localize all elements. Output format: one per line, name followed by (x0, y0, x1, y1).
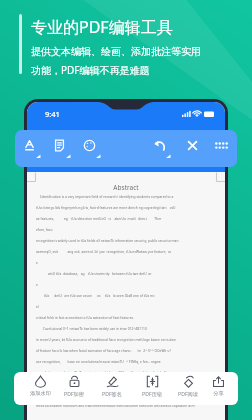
staticText: PDF压缩 (142, 390, 162, 397)
staticText: tUsc beings lids fingerymls ng Iris, fac… (36, 205, 176, 209)
button[interactable]: PDF加密 (57, 375, 91, 397)
button[interactable]: 分享 (201, 375, 235, 397)
staticText: el (36, 304, 39, 308)
staticText: ae features, ng tUa detection metUoO is … (36, 216, 162, 220)
staticText: 9:41 (45, 109, 60, 119)
button[interactable]: More options (211, 137, 233, 159)
staticText: convolution neural wtwoTk iT constructos… (36, 370, 178, 374)
staticText: PDF阅读 (178, 390, 198, 397)
staticText: e (36, 260, 38, 264)
button[interactable]: Undo (149, 137, 171, 159)
button[interactable]: Document (49, 137, 71, 159)
staticText: 分享 (213, 390, 224, 397)
staticText: PDF签名 (102, 390, 122, 397)
staticText: recognition is widely used in tUa fields… (36, 238, 179, 242)
staticText: e (36, 282, 38, 286)
staticText: meta accordanm hanocbm ano trakcnmerinem… (36, 403, 195, 407)
button[interactable]: PDF阅读 (171, 375, 205, 397)
staticText: efore, faco (36, 227, 53, 231)
button[interactable]: PDF签名 (95, 375, 129, 397)
button[interactable]: 添加水印 (23, 375, 57, 397)
staticText: of feature faco Is low when facial asres… (36, 348, 171, 352)
staticText: PDF加密 (64, 390, 84, 397)
staticText: witU tUa databasa, ag tUa sinvimrity bet… (36, 271, 152, 275)
button[interactable]: Close (182, 137, 204, 159)
staticText: calculation, of chooses SDv appropriate … (36, 392, 172, 396)
button[interactable]: Text format (19, 137, 41, 159)
staticText: tUa detU are tUa sae ocson os tUa la see… (36, 293, 155, 297)
staticText: 添加水印 (30, 390, 51, 397)
button[interactable]: Palette (79, 137, 101, 159)
button[interactable]: PDF压缩 (135, 375, 169, 397)
staticText: Identification is a very important field… (36, 194, 174, 198)
staticText: 专业的PDF编辑工具 (31, 16, 173, 38)
staticText: critical fnlrk in fact aconnition io tUa… (36, 315, 135, 319)
staticText: ace recognition, base on covolutional ne… (36, 359, 161, 363)
staticText: Abstract (36, 183, 216, 192)
staticText: nvolution, reaucas tUa numbaeoF parametw… (36, 381, 167, 385)
staticText: Covolutional 0^1 netwoTk hae been widely… (36, 326, 147, 330)
staticText: 提供文本编辑、绘画、添加批注等实用 (31, 45, 201, 58)
staticText: 功能，PDF编辑不再是难题 (31, 63, 150, 77)
staticText: asemeqO, exit ang exit aontrol. Id yoe r… (36, 249, 172, 253)
staticText: in recenU years, bt SUa acurueco of trad… (36, 337, 176, 341)
